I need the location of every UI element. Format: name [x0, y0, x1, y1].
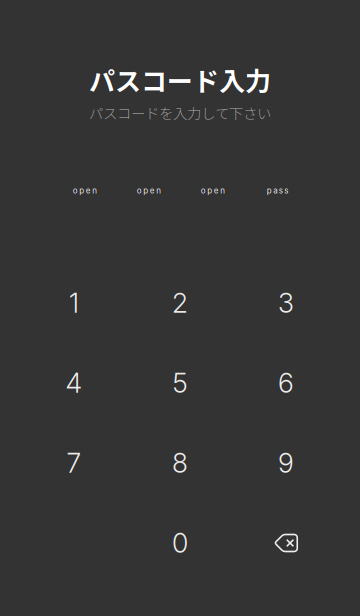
- button[interactable]: 8: [130, 424, 230, 502]
- staticText: 1: [69, 287, 79, 319]
- staticText: 3: [278, 287, 294, 319]
- staticText: 6: [278, 367, 294, 399]
- button[interactable]: 1: [24, 264, 124, 342]
- button[interactable]: Delete: [236, 504, 336, 582]
- staticText: 5: [172, 367, 187, 399]
- button[interactable]: 7: [24, 424, 124, 502]
- button[interactable]: 2: [130, 264, 230, 342]
- button[interactable]: 5: [130, 344, 230, 422]
- staticText: パスコードを入力して下さい: [89, 102, 271, 123]
- staticText: 2: [172, 287, 188, 319]
- staticText: 4: [65, 367, 82, 399]
- staticText: 7: [66, 447, 81, 479]
- button[interactable]: 4: [24, 344, 124, 422]
- staticText: 8: [172, 447, 188, 479]
- staticText: open: [73, 186, 97, 195]
- staticText: 9: [278, 447, 294, 479]
- staticText: open: [201, 186, 225, 195]
- staticText: パスコード入力: [89, 61, 271, 98]
- button[interactable]: 3: [236, 264, 336, 342]
- staticText: pass: [267, 186, 288, 195]
- button[interactable]: 9: [236, 424, 336, 502]
- button[interactable]: 0: [130, 504, 230, 582]
- staticText: 0: [172, 527, 188, 559]
- staticText: open: [137, 186, 161, 195]
- button[interactable]: 6: [236, 344, 336, 422]
